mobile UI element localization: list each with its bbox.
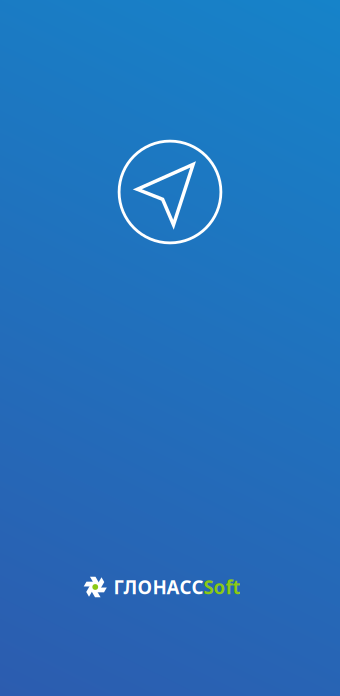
staticText: Soft [203,575,240,599]
staticText: ГЛОНАСС [113,575,203,599]
